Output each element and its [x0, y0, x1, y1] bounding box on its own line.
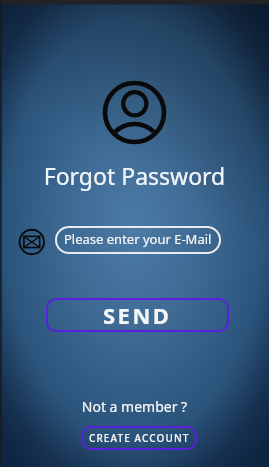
button[interactable]: CREATE ACCOUNT — [81, 426, 197, 450]
staticText: Not a member ? — [0, 397, 269, 416]
staticText: Forgot Password — [0, 160, 269, 191]
staticText: Please enter your E-Mail — [64, 230, 212, 248]
staticText: CREATE ACCOUNT — [89, 431, 190, 445]
staticText: SEND — [103, 300, 172, 330]
button[interactable]: SEND — [46, 298, 229, 332]
button[interactable]: Please enter your E-Mail — [55, 226, 221, 254]
